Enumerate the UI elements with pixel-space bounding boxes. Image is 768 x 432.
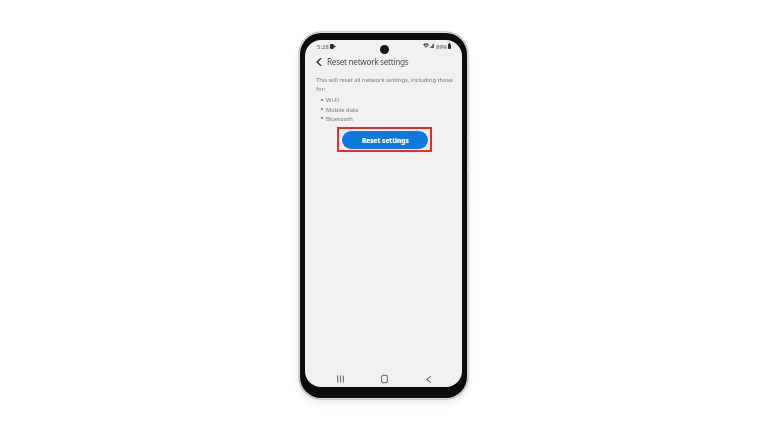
- button[interactable]: Recent apps: [328, 367, 352, 387]
- button[interactable]: Back: [416, 367, 440, 387]
- button[interactable]: Reset settings: [342, 131, 428, 149]
- staticText: This will reset all network settings, in…: [316, 76, 454, 93]
- staticText: Wi-Fi: [326, 96, 340, 104]
- staticText: Mobile data: [326, 106, 359, 114]
- button[interactable]: Back: [312, 55, 325, 68]
- staticText: Bluetooth: [326, 115, 353, 123]
- button[interactable]: Home: [372, 367, 396, 387]
- staticText: Reset settings: [362, 136, 409, 145]
- staticText: 89%: [436, 43, 448, 51]
- staticText: Reset network settings: [327, 56, 409, 67]
- staticText: 5:28: [317, 43, 329, 51]
